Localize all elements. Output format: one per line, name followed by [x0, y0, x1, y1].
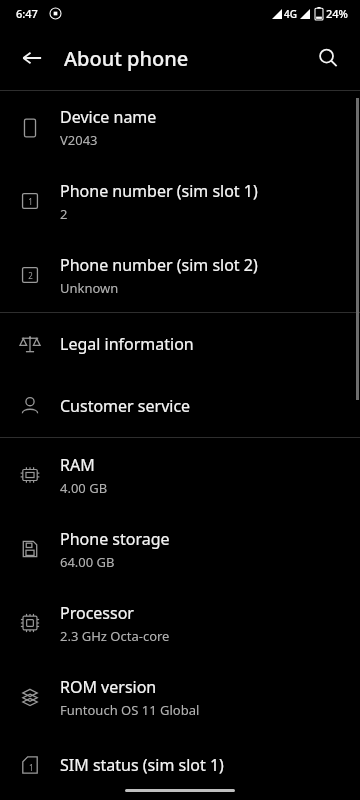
staticText: SIM status (sim slot 1): [60, 754, 224, 776]
button[interactable]: Customer service: [0, 375, 360, 437]
staticText: Legal information: [60, 333, 194, 355]
staticText: 1: [28, 196, 33, 207]
staticText: Funtouch OS 11 Global: [60, 701, 200, 719]
staticText: Processor: [60, 602, 134, 624]
staticText: 4G: [284, 7, 297, 21]
staticText: Phone storage: [60, 528, 170, 550]
staticText: V2043: [60, 131, 98, 149]
staticText: RAM: [60, 454, 95, 476]
staticText: 4.00 GB: [60, 479, 108, 497]
staticText: Device name: [60, 106, 157, 128]
staticText: Customer service: [60, 395, 191, 417]
button[interactable]: RAM: [0, 438, 360, 512]
button[interactable]: Device name: [0, 91, 360, 164]
button[interactable]: Search: [306, 36, 350, 80]
button[interactable]: ROM version: [0, 660, 360, 734]
staticText: 2: [28, 270, 33, 281]
button[interactable]: 1: [0, 734, 360, 796]
button[interactable]: Processor: [0, 586, 360, 660]
button[interactable]: 2: [0, 238, 360, 312]
button[interactable]: Back: [10, 36, 54, 80]
staticText: ROM version: [60, 676, 157, 698]
button[interactable]: Legal information: [0, 313, 360, 375]
staticText: Phone number (sim slot 1): [60, 180, 258, 202]
button[interactable]: Phone storage: [0, 512, 360, 586]
staticText: 24%: [326, 6, 348, 21]
staticText: 6:47: [16, 6, 38, 21]
staticText: 2: [60, 205, 68, 223]
staticText: About phone: [64, 45, 189, 72]
staticText: 2.3 GHz Octa-core: [60, 627, 170, 645]
button[interactable]: 1: [0, 164, 360, 238]
staticText: 1: [29, 762, 34, 773]
staticText: Unknown: [60, 279, 119, 297]
staticText: Phone number (sim slot 2): [60, 254, 258, 276]
staticText: 64.00 GB: [60, 553, 115, 571]
